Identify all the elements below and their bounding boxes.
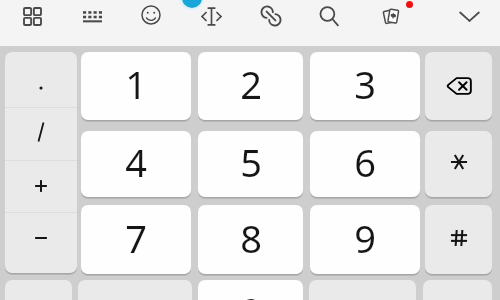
button[interactable]: Keyboard (69, 0, 115, 39)
button[interactable]: 2 (198, 52, 303, 120)
button[interactable]: 3 (310, 52, 420, 120)
button[interactable]: Search (306, 0, 352, 39)
button[interactable]: Move cursor (188, 0, 234, 39)
staticText: 2 (240, 58, 262, 110)
staticText: 5 (240, 136, 262, 188)
staticText: 9 (354, 212, 376, 264)
button[interactable]: 6 (310, 131, 420, 197)
button[interactable]: 8 (198, 205, 303, 274)
staticText: 7 (125, 212, 147, 264)
button[interactable]: 9 (310, 205, 420, 274)
button[interactable] (5, 280, 72, 300)
button[interactable] (5, 52, 77, 273)
staticText: 3 (354, 58, 376, 110)
button[interactable] (5, 52, 77, 107)
staticText: 8 (240, 212, 262, 264)
staticText: 4 (125, 136, 147, 188)
button[interactable]: 5 (198, 131, 303, 197)
button[interactable] (5, 108, 77, 160)
button[interactable] (425, 52, 492, 120)
button[interactable]: Apps (9, 0, 55, 39)
button[interactable]: Stickers (369, 0, 415, 39)
button[interactable]: 0 (198, 280, 303, 300)
button[interactable] (423, 280, 492, 300)
button[interactable]: 7 (81, 205, 191, 274)
button[interactable]: Collapse (446, 0, 492, 39)
staticText: 0 (240, 285, 262, 300)
button[interactable] (5, 213, 77, 273)
staticText: 6 (354, 136, 376, 188)
button[interactable] (5, 161, 77, 212)
button[interactable] (425, 205, 492, 274)
button[interactable]: Emoji (128, 0, 174, 38)
button[interactable]: 1 (81, 52, 191, 120)
button[interactable]: 4 (81, 131, 191, 197)
staticText: 1 (125, 58, 147, 110)
button[interactable] (425, 131, 492, 197)
button[interactable]: Link (248, 0, 294, 39)
